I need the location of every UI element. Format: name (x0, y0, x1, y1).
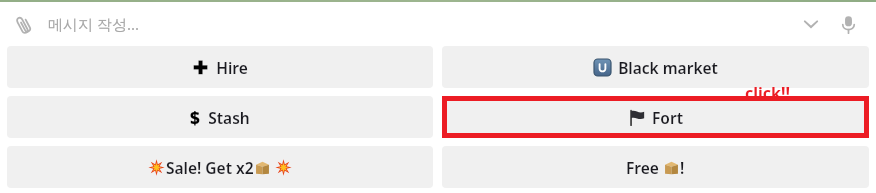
staticText: ✚ (193, 57, 209, 78)
button[interactable]: Voice input (830, 6, 866, 42)
staticText: Fort (652, 107, 683, 128)
button[interactable]: 메시지 작성... (48, 14, 792, 34)
staticText: Black market (618, 57, 718, 78)
button[interactable]: Attach file (6, 7, 40, 41)
staticText: click!! (745, 82, 791, 104)
button[interactable]: Free (442, 146, 869, 188)
staticText: Sale! Get x2 (166, 157, 254, 178)
button[interactable]: ✚ (7, 46, 433, 88)
button[interactable]: Expand (792, 5, 830, 43)
staticText: $ (190, 106, 200, 129)
button[interactable]: $ (7, 96, 433, 138)
button[interactable]: Fort (447, 101, 864, 133)
staticText: Hire (216, 57, 248, 78)
staticText: Stash (208, 107, 250, 128)
staticText: ! (680, 157, 685, 178)
button[interactable]: Sale! Get x2 (7, 146, 433, 188)
staticText: Free (626, 157, 663, 178)
staticText: 메시지 작성... (48, 14, 139, 34)
button[interactable]: Black market (442, 46, 869, 88)
